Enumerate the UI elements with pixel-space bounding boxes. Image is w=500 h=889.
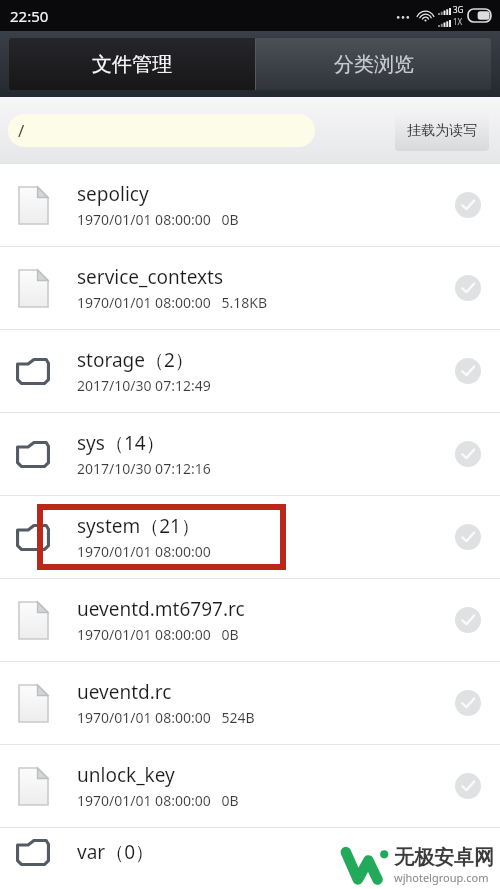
button[interactable]: 文件管理 (9, 38, 255, 90)
staticText: 文件管理 (92, 52, 172, 77)
staticText: / (18, 119, 25, 142)
staticText: service_contexts (77, 264, 224, 290)
button[interactable]: storage（2） (0, 330, 500, 412)
button[interactable]: ueventd.mt6797.rc (0, 579, 500, 661)
button[interactable]: 挂载为读写 (395, 110, 489, 151)
staticText: sepolicy (77, 181, 149, 207)
staticText: var（0） (77, 839, 155, 865)
button[interactable]: Select ueventd.mt6797.rc (446, 598, 490, 642)
button[interactable]: Select sepolicy (446, 183, 490, 227)
button[interactable]: Select unlock_key (446, 764, 490, 808)
staticText: ueventd.mt6797.rc (77, 596, 245, 622)
staticText: 22:50 (10, 6, 49, 26)
staticText: 2017/10/30 07:12:16 (77, 459, 211, 478)
button[interactable]: ueventd.rc (0, 662, 500, 744)
staticText: sys（14） (77, 430, 165, 456)
staticText: 挂载为读写 (407, 122, 477, 140)
button[interactable]: unlock_key (0, 745, 500, 827)
button[interactable]: var（0） (0, 828, 500, 876)
staticText: 1970/01/01 08:00:00 5.18KB (77, 293, 268, 312)
button[interactable]: Select service_contexts (446, 266, 490, 310)
staticText: storage（2） (77, 347, 194, 373)
button[interactable]: sepolicy (0, 164, 500, 246)
button[interactable]: Select system（21） (446, 515, 490, 559)
button[interactable]: 分类浏览 (256, 38, 491, 90)
staticText: 2017/10/30 07:12:49 (77, 376, 211, 395)
staticText: 1X (453, 16, 463, 27)
button[interactable]: Select ueventd.rc (446, 681, 490, 725)
staticText: system（21） (77, 513, 200, 539)
button[interactable]: system（21） (0, 496, 500, 578)
staticText: 无极安卓网 (394, 845, 494, 870)
staticText: 1970/01/01 08:00:00 (77, 542, 211, 561)
staticText: 1970/01/01 08:00:00 0B (77, 791, 239, 810)
staticText: 1970/01/01 08:00:00 524B (77, 708, 255, 727)
staticText: 3G (453, 4, 464, 15)
staticText: 分类浏览 (334, 52, 414, 77)
staticText: 1970/01/01 08:00:00 0B (77, 625, 239, 644)
staticText: ueventd.rc (77, 679, 172, 705)
button[interactable]: service_contexts (0, 247, 500, 329)
staticText: 1970/01/01 08:00:00 0B (77, 210, 239, 229)
staticText: wjhotelgroup.com (394, 870, 489, 885)
button[interactable]: Select sys（14） (446, 432, 490, 476)
button[interactable]: sys（14） (0, 413, 500, 495)
staticText: unlock_key (77, 762, 175, 788)
button[interactable]: Select storage（2） (446, 349, 490, 393)
button[interactable]: / (8, 114, 315, 147)
